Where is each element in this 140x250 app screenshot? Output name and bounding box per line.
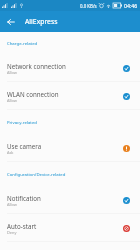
- staticText: Allow: [7, 202, 17, 207]
- staticText: Notification: [7, 194, 41, 202]
- button[interactable]: Notification: [0, 186, 140, 214]
- staticText: Deny: [7, 230, 17, 235]
- staticText: Use camera: [7, 142, 42, 150]
- staticText: Ask: [7, 150, 14, 155]
- button[interactable]: Use camera: [0, 134, 140, 162]
- staticText: Auto-start: [7, 222, 37, 230]
- button[interactable]: WLAN connection: [0, 82, 140, 110]
- button[interactable]: Network connection: [0, 54, 140, 82]
- staticText: WLAN connection: [7, 90, 59, 98]
- staticText: AliExpress: [25, 17, 58, 26]
- button[interactable]: Back: [0, 11, 21, 32]
- staticText: 04:46: [124, 2, 138, 9]
- staticText: 0.0 KB/s: [80, 3, 97, 9]
- staticText: Allow: [7, 70, 17, 75]
- button[interactable]: Auto-start: [0, 214, 140, 242]
- staticText: Allow: [7, 98, 17, 103]
- staticText: Configuration/Device-related: [7, 171, 66, 177]
- staticText: Privacy-related: [7, 119, 37, 125]
- staticText: Charge-related: [7, 40, 38, 46]
- staticText: Network connection: [7, 62, 66, 70]
